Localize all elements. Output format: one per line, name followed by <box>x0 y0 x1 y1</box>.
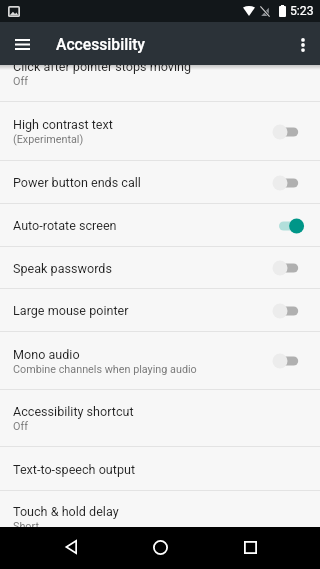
button[interactable]: Auto-rotate screen <box>0 204 320 247</box>
staticText: Off <box>13 75 28 88</box>
staticText: 5:23 <box>290 4 314 18</box>
button[interactable]: Touch & hold delay <box>0 491 320 527</box>
staticText: Text-to-speech output <box>13 462 136 477</box>
button[interactable]: Power button ends call <box>0 161 320 204</box>
staticText: Speak passwords <box>13 261 112 276</box>
button[interactable]: Back <box>25 527 115 569</box>
button[interactable]: Text-to-speech output <box>0 447 320 491</box>
button[interactable]: Click after pointer stops moving <box>0 65 320 102</box>
staticText: Off <box>13 420 28 433</box>
button[interactable]: More options <box>278 23 320 65</box>
button[interactable]: Mono audio <box>0 332 320 390</box>
staticText: (Experimental) <box>13 133 84 146</box>
staticText: Power button ends call <box>13 175 141 190</box>
button[interactable]: Navigation menu <box>0 23 42 65</box>
button[interactable]: Large mouse pointer <box>0 289 320 332</box>
staticText: Auto-rotate screen <box>13 218 117 233</box>
button[interactable]: High contrast text <box>0 102 320 161</box>
staticText: Accessibility shortcut <box>13 404 134 419</box>
staticText: Click after pointer stops moving <box>13 65 191 74</box>
staticText: Mono audio <box>13 347 80 362</box>
button[interactable]: Speak passwords <box>0 247 320 289</box>
button[interactable]: Recent apps <box>205 527 295 569</box>
staticText: Accessibility <box>56 35 146 53</box>
button[interactable]: Home <box>115 527 205 569</box>
staticText: Short <box>13 520 39 527</box>
button[interactable]: Accessibility shortcut <box>0 390 320 447</box>
staticText: Touch & hold delay <box>13 504 119 519</box>
staticText: High contrast text <box>13 117 113 132</box>
staticText: Large mouse pointer <box>13 303 129 318</box>
staticText: Combine channels when playing audio <box>13 363 197 376</box>
